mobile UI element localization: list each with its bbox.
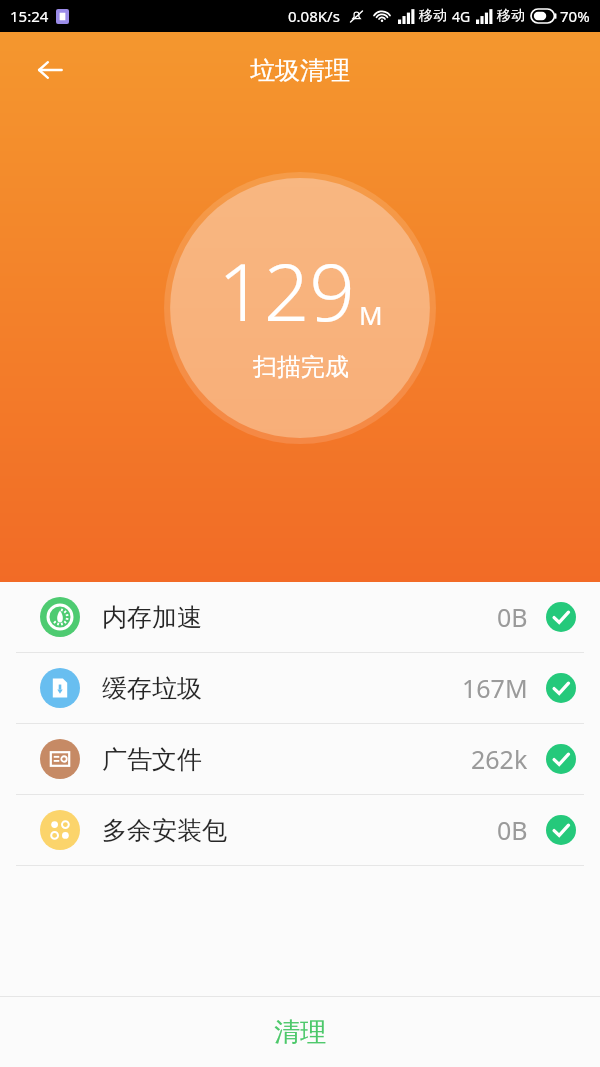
staticText: 广告文件 xyxy=(102,744,202,775)
staticText: 0.08K/s xyxy=(288,6,340,26)
button[interactable]: 内存加速 xyxy=(0,582,600,652)
staticText: 70% xyxy=(560,6,590,26)
staticText: 167M xyxy=(462,671,528,705)
staticText: 262k xyxy=(471,742,528,776)
staticText: 0B xyxy=(497,813,528,847)
staticText: 垃圾清理 xyxy=(250,55,350,86)
staticText: 15:24 xyxy=(10,6,49,26)
button[interactable]: 多余安装包 xyxy=(0,795,600,865)
staticText: 缓存垃圾 xyxy=(102,673,202,704)
staticText: 清理 xyxy=(274,1016,326,1049)
staticText: 129 xyxy=(218,235,356,344)
staticText: 内存加速 xyxy=(102,602,202,633)
staticText: 移动 xyxy=(497,7,525,25)
staticText: 多余安装包 xyxy=(102,815,227,846)
staticText: 0B xyxy=(497,600,528,634)
staticText: 4G xyxy=(452,7,471,26)
button[interactable]: 缓存垃圾 xyxy=(0,653,600,723)
staticText: M xyxy=(359,297,383,332)
button[interactable]: Back xyxy=(22,42,78,98)
staticText: 扫描完成 xyxy=(253,352,349,382)
staticText: 移动 xyxy=(419,7,447,25)
button[interactable]: 清理 xyxy=(0,997,600,1067)
button[interactable]: 广告文件 xyxy=(0,724,600,794)
